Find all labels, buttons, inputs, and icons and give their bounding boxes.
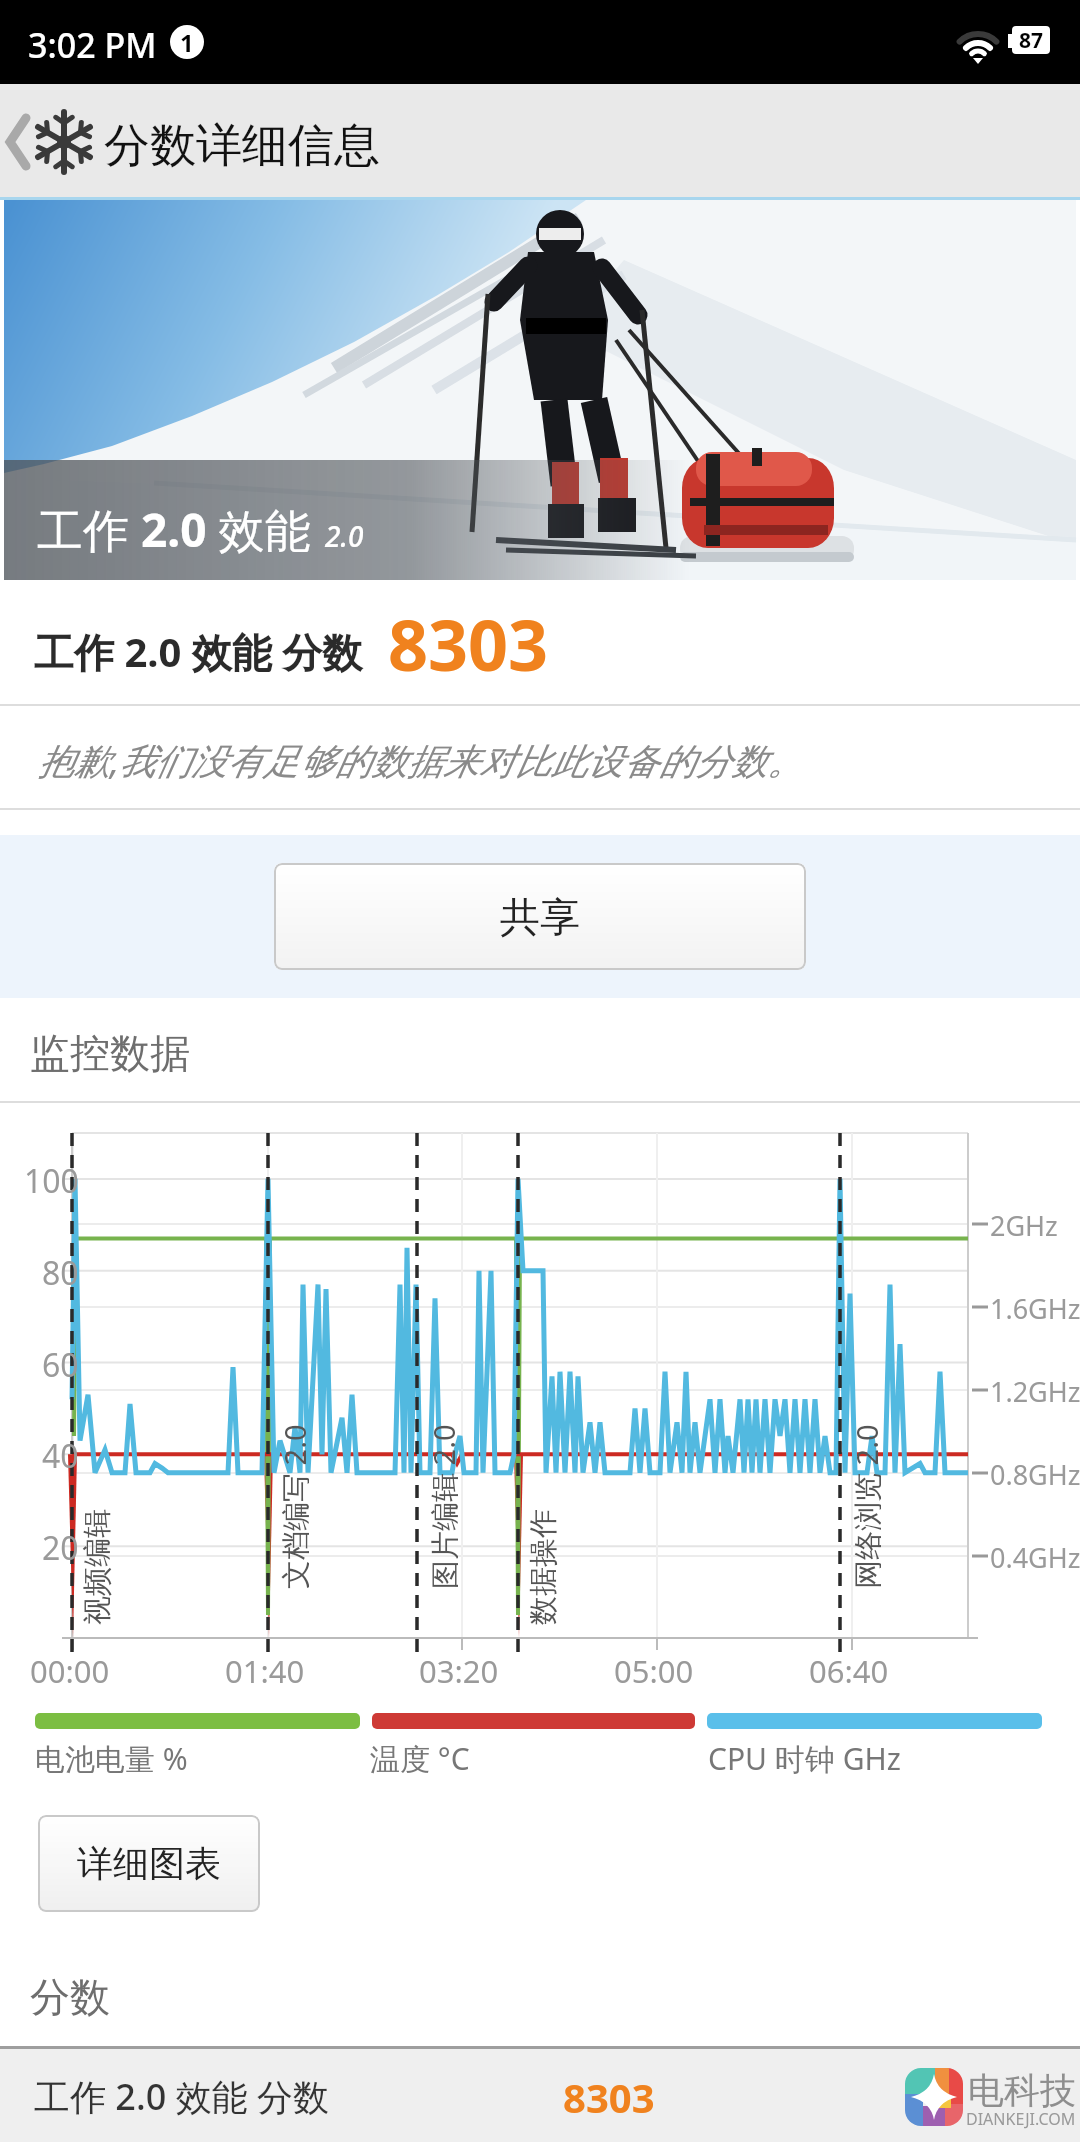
staticText: 抱歉,我们没有足够的数据来对比此设备的分数。 bbox=[38, 736, 804, 785]
staticText: 1.2GHz bbox=[990, 1373, 1080, 1410]
staticText: 电科技 bbox=[968, 2068, 1076, 2113]
staticText: 20 bbox=[42, 1526, 79, 1570]
staticText: 0.8GHz bbox=[990, 1456, 1080, 1493]
staticText: 网络浏览 2.0 bbox=[847, 1424, 881, 1589]
staticText: DIANKEJI.COM bbox=[966, 2108, 1076, 2130]
staticText: 工作 2.0 效能 2.0 bbox=[37, 498, 364, 561]
staticText: 00:00 bbox=[30, 1650, 110, 1692]
staticText: 87 bbox=[1019, 26, 1044, 54]
staticText: 40 bbox=[42, 1434, 79, 1478]
staticText: 06:40 bbox=[809, 1650, 889, 1692]
staticText: 3:02 PM bbox=[28, 22, 157, 68]
staticText: 0.4GHz bbox=[990, 1539, 1080, 1576]
staticText: 2GHz bbox=[990, 1207, 1058, 1244]
staticText: CPU 时钟 GHz bbox=[708, 1738, 901, 1779]
staticText: 共享 bbox=[500, 892, 580, 942]
staticText: 文档编写 2.0 bbox=[275, 1424, 309, 1589]
staticText: 01:40 bbox=[225, 1650, 305, 1692]
staticText: 分数详细信息 bbox=[104, 117, 380, 175]
staticText: 8303 bbox=[563, 2070, 655, 2124]
staticText: 数据操作 bbox=[525, 1509, 559, 1625]
staticText: 分数 bbox=[30, 1972, 110, 2022]
staticText: 80 bbox=[42, 1251, 79, 1295]
button[interactable]: 共享 bbox=[274, 863, 806, 970]
staticText: 03:20 bbox=[419, 1650, 499, 1692]
staticText: 详细图表 bbox=[77, 1841, 221, 1886]
staticText: 05:00 bbox=[614, 1650, 694, 1692]
staticText: 监控数据 bbox=[30, 1028, 190, 1078]
staticText: 60 bbox=[42, 1343, 79, 1387]
staticText: 电池电量 % bbox=[35, 1738, 188, 1779]
staticText: 视频编辑 bbox=[79, 1509, 113, 1625]
button[interactable]: 工作 2.0 效能 2.0 bbox=[4, 200, 1076, 580]
button[interactable]: 详细图表 bbox=[38, 1815, 260, 1912]
staticText: 100 bbox=[24, 1159, 79, 1203]
staticText: 1.6GHz bbox=[990, 1290, 1080, 1327]
staticText: 工作 2.0 效能 分数 bbox=[34, 624, 363, 679]
staticText: 8303 bbox=[388, 596, 549, 691]
staticText: 图片编辑 2.0 bbox=[424, 1424, 458, 1589]
staticText: 工作 2.0 效能 分数 bbox=[34, 2072, 330, 2121]
staticText: 温度 °C bbox=[370, 1738, 470, 1779]
button[interactable] bbox=[0, 100, 100, 186]
staticText: 1 bbox=[180, 26, 194, 59]
